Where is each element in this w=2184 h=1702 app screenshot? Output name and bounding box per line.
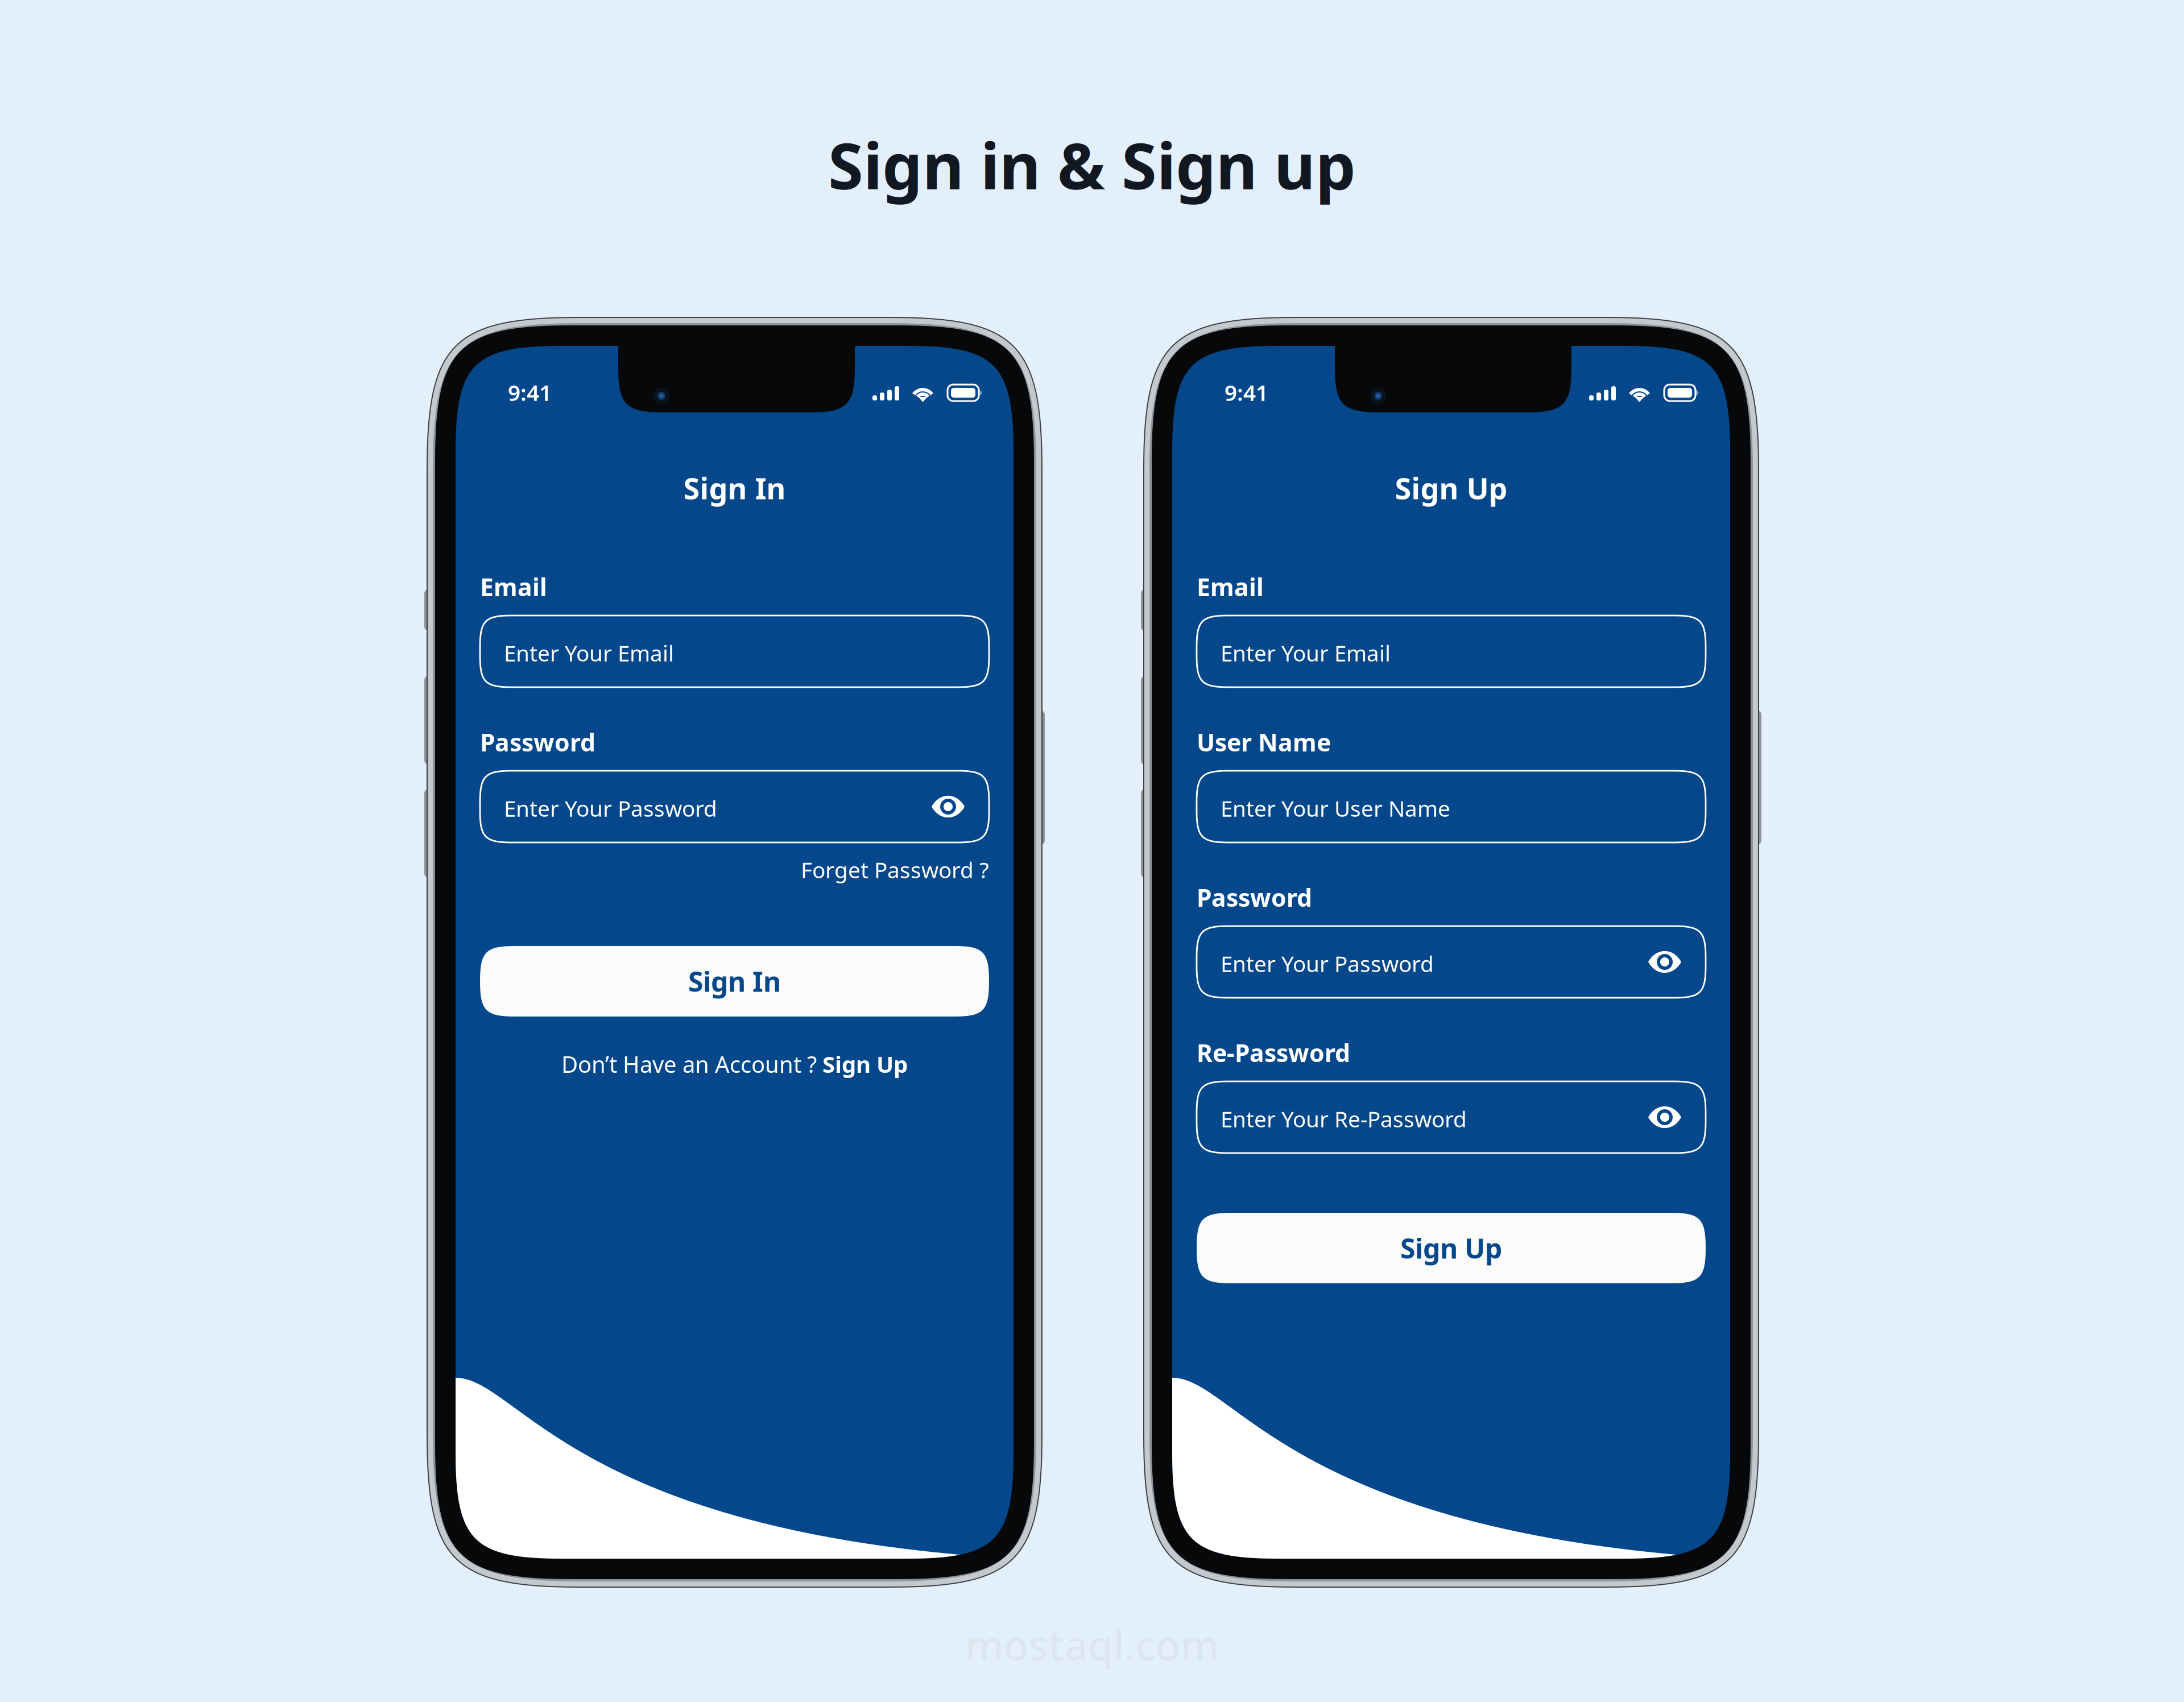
staticText: Sign Up: [822, 1049, 908, 1079]
staticText: Email: [480, 571, 547, 603]
staticText: Enter Your Email: [504, 638, 674, 667]
staticText: Sign In: [688, 963, 781, 999]
button[interactable]: Enter Your Email: [1197, 615, 1706, 687]
button[interactable]: Show password: [1631, 1089, 1698, 1145]
staticText: Re-Password: [1197, 1036, 1350, 1069]
staticText: User Name: [1197, 726, 1331, 758]
button[interactable]: Enter Your User Name: [1197, 771, 1706, 842]
staticText: Sign In: [683, 468, 786, 507]
button[interactable]: Sign Up: [822, 1049, 908, 1079]
staticText: Enter Your Email: [1221, 638, 1391, 667]
staticText: Don’t Have an Account ?: [561, 1049, 822, 1079]
staticText: Email: [1197, 571, 1264, 603]
button[interactable]: Forget Password ?: [480, 855, 989, 884]
button[interactable]: Enter Your Re-Password: [1197, 1081, 1706, 1153]
staticText: Password: [1197, 881, 1312, 913]
staticText: Enter Your Password: [504, 794, 717, 823]
staticText: 9:41: [508, 378, 552, 407]
staticText: Sign in & Sign up: [828, 122, 1356, 207]
staticText: Sign Up: [1395, 468, 1507, 507]
staticText: Sign Up: [1400, 1230, 1502, 1266]
button[interactable]: Sign In: [480, 946, 989, 1017]
staticText: Enter Your Password: [1221, 949, 1434, 978]
staticText: Enter Your Re-Password: [1221, 1104, 1467, 1133]
button[interactable]: Enter Your Password: [480, 771, 989, 842]
staticText: mostaql.com: [965, 1617, 1219, 1672]
staticText: Password: [480, 726, 595, 758]
button[interactable]: Show password: [1631, 934, 1698, 990]
button[interactable]: Show password: [915, 778, 982, 835]
staticText: 9:41: [1225, 378, 1268, 407]
staticText: Forget Password ?: [801, 855, 989, 884]
button[interactable]: Enter Your Password: [1197, 926, 1706, 998]
button[interactable]: Enter Your Email: [480, 615, 989, 687]
button[interactable]: Sign Up: [1197, 1213, 1706, 1283]
staticText: Enter Your User Name: [1221, 794, 1450, 823]
